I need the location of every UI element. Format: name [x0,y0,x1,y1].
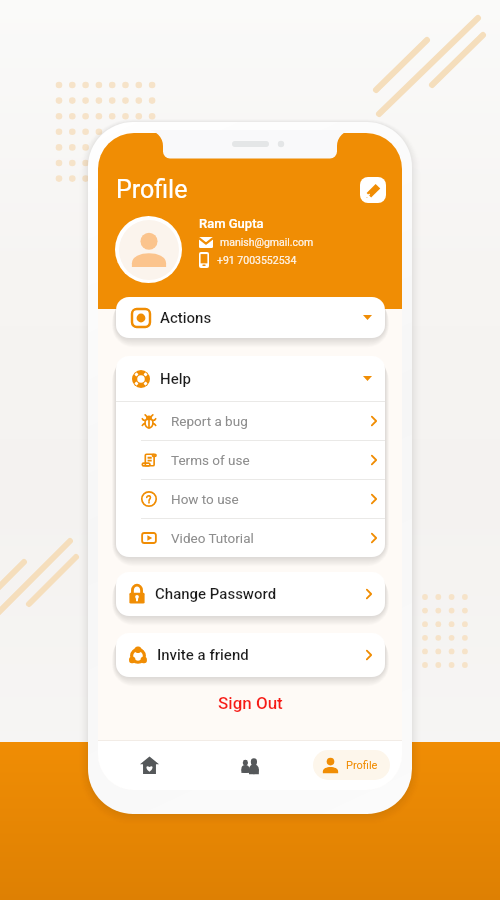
staticText: Invite a friend [157,646,249,664]
button[interactable]: Profile [313,750,390,780]
staticText: Report a bug [171,413,248,429]
staticText: Sign Out [218,693,283,713]
staticText: Profile [346,759,378,772]
button[interactable]: Invite a friend [116,633,385,677]
button[interactable]: Home [98,741,200,790]
button[interactable]: How to use [116,480,385,518]
staticText: manish@gmail.com [220,236,314,248]
staticText: Change Password [155,585,277,603]
button[interactable]: Edit profile [360,177,386,203]
button[interactable]: People [200,741,301,790]
button[interactable]: Help [116,356,385,401]
staticText: Actions [160,309,212,327]
staticText: Ram Gupta [199,216,264,231]
button[interactable]: Video Tutorial [116,519,385,557]
button[interactable]: Report a bug [116,402,385,440]
button[interactable]: Sign Out [204,689,297,717]
staticText: Profile [116,175,188,204]
button[interactable]: Actions [116,297,385,338]
staticText: Video Tutorial [171,530,254,546]
staticText: Help [160,370,191,388]
staticText: +91 7003552534 [217,254,297,266]
button[interactable]: Terms of use [116,441,385,479]
staticText: Terms of use [171,452,250,468]
button[interactable]: Change Password [116,572,385,616]
staticText: How to use [171,491,239,507]
